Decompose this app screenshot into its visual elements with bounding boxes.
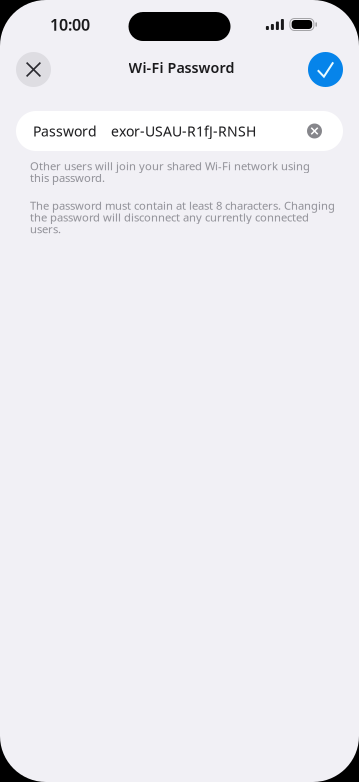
staticText: 10:00 xyxy=(50,14,90,35)
staticText: The password must contain at least 8 cha… xyxy=(30,199,335,235)
button[interactable]: Clear password xyxy=(307,123,322,138)
staticText: Other users will join your shared Wi-Fi … xyxy=(30,160,310,183)
staticText: Password xyxy=(33,121,97,141)
button[interactable]: Save password xyxy=(308,52,343,87)
staticText: Wi-Fi Password xyxy=(128,58,234,77)
button[interactable]: Password xyxy=(33,121,256,141)
staticText: exor-USAU-R1fJ-RNSH xyxy=(111,121,256,141)
button[interactable]: Close xyxy=(16,52,51,87)
